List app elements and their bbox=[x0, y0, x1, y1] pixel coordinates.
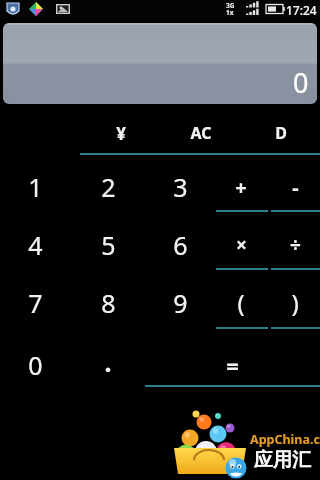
button[interactable]: Close parenthesis bbox=[270, 276, 320, 328]
staticText: 1 bbox=[28, 170, 43, 204]
staticText: 6 bbox=[173, 228, 188, 262]
staticText: D bbox=[275, 122, 287, 144]
staticText: AC bbox=[190, 122, 212, 144]
staticText: 7 bbox=[28, 286, 43, 320]
staticText: - bbox=[292, 174, 299, 201]
staticText: 应用汇 bbox=[254, 448, 311, 472]
button[interactable]: Currency bbox=[86, 117, 156, 149]
button[interactable]: 7 bbox=[0, 275, 71, 331]
button[interactable]: 1 bbox=[0, 159, 71, 215]
button[interactable]: 9 bbox=[144, 275, 216, 331]
button[interactable]: 2 bbox=[72, 159, 144, 215]
staticText: 3 bbox=[173, 170, 188, 204]
button[interactable]: Equals bbox=[157, 339, 307, 391]
staticText: 1x bbox=[226, 8, 234, 17]
button[interactable]: AC bbox=[166, 117, 236, 149]
button[interactable]: Delete bbox=[251, 117, 311, 149]
button[interactable]: 0 bbox=[3, 23, 317, 104]
button[interactable]: 3 bbox=[144, 159, 216, 215]
staticText: . bbox=[104, 345, 112, 379]
button[interactable]: Plus bbox=[213, 161, 269, 213]
staticText: 9 bbox=[173, 286, 188, 320]
staticText: × bbox=[236, 232, 247, 258]
staticText: 0 bbox=[28, 348, 43, 382]
button[interactable]: Open parenthesis bbox=[213, 276, 269, 328]
button[interactable]: Minus bbox=[270, 161, 320, 213]
staticText: 8 bbox=[101, 286, 116, 320]
staticText: + bbox=[235, 174, 247, 201]
button[interactable]: Decimal point bbox=[72, 336, 144, 388]
staticText: 2 bbox=[101, 170, 116, 204]
staticText: = bbox=[226, 350, 239, 380]
staticText: ( bbox=[237, 286, 245, 319]
staticText: 17:24 bbox=[286, 2, 317, 18]
staticText: 4 bbox=[28, 228, 43, 262]
button[interactable]: 0 bbox=[0, 337, 71, 393]
button[interactable]: Divide bbox=[270, 219, 320, 271]
staticText: 3G bbox=[226, 1, 235, 10]
button[interactable]: Multiply bbox=[213, 219, 269, 271]
button[interactable]: 6 bbox=[144, 217, 216, 273]
staticText: 5 bbox=[101, 228, 116, 262]
staticText: AppChina.com bbox=[250, 431, 320, 448]
button[interactable]: 8 bbox=[72, 275, 144, 331]
staticText: ÷ bbox=[290, 232, 301, 258]
staticText: ) bbox=[291, 286, 299, 319]
button[interactable]: 5 bbox=[72, 217, 144, 273]
staticText: 0 bbox=[293, 64, 309, 101]
staticText: ¥ bbox=[116, 122, 126, 145]
button[interactable]: 4 bbox=[0, 217, 71, 273]
